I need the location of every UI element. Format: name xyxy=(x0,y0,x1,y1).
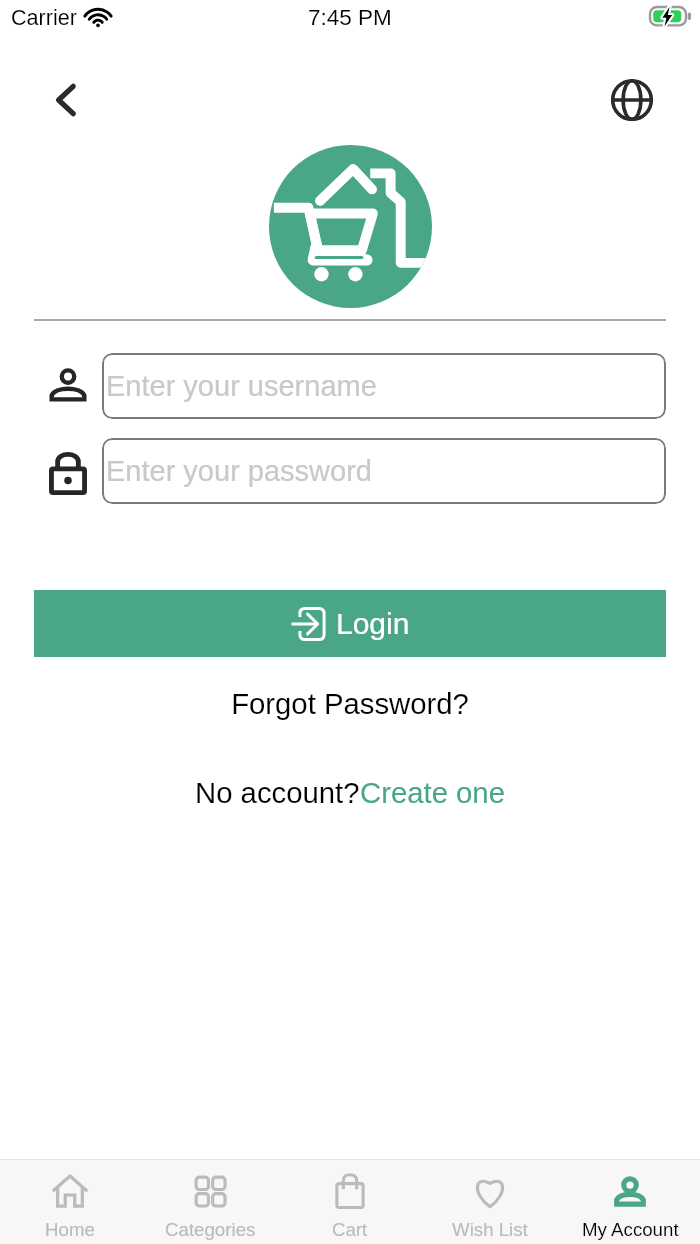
button[interactable]: Enter your username xyxy=(102,353,666,419)
staticText: Categories xyxy=(165,1219,256,1240)
staticText: My Account xyxy=(582,1219,679,1240)
staticText: Login xyxy=(336,607,410,641)
button[interactable]: Home xyxy=(0,1172,140,1240)
button[interactable]: Login xyxy=(34,590,666,657)
staticText: No account? xyxy=(195,776,360,809)
staticText: Wish List xyxy=(452,1219,528,1240)
staticText: 7:45 PM xyxy=(308,5,392,30)
staticText: Enter your username xyxy=(106,370,377,402)
button[interactable]: Wish List xyxy=(420,1172,560,1240)
button[interactable]: Back xyxy=(42,76,90,124)
staticText: Enter your password xyxy=(106,455,372,487)
staticText: Carrier xyxy=(11,5,77,29)
button[interactable]: Forgot Password? xyxy=(0,687,700,720)
button[interactable]: Cart xyxy=(280,1172,420,1240)
button[interactable]: My Account xyxy=(560,1172,700,1240)
button[interactable]: Language xyxy=(608,76,656,124)
staticText: Home xyxy=(45,1219,95,1240)
button[interactable]: Enter your password xyxy=(102,438,666,504)
button[interactable]: Categories xyxy=(140,1172,280,1240)
staticText: Cart xyxy=(332,1219,368,1240)
button[interactable]: Create one xyxy=(360,776,505,809)
